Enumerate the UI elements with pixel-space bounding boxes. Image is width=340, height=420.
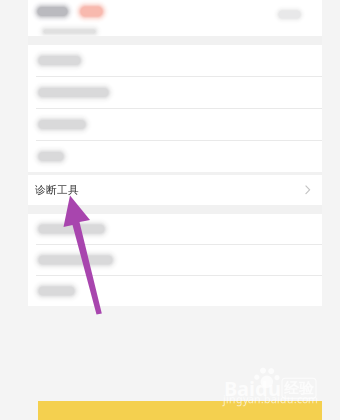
button[interactable]: Account [28,0,322,36]
button[interactable]: Setting [28,109,322,140]
button[interactable]: Setting [28,245,322,275]
button[interactable]: Setting [28,141,322,172]
button[interactable]: Setting [28,214,322,244]
staticText: jingyan.baidu.com [223,392,318,406]
button[interactable]: 诊断工具 [28,175,322,205]
button[interactable]: Setting [28,45,322,76]
staticText: Baidu [224,375,281,402]
button[interactable]: Primary action [28,401,322,420]
button[interactable]: Setting [28,276,322,306]
staticText: 经验 [284,379,314,397]
button[interactable]: Setting [28,77,322,108]
staticText: 诊断工具 [35,183,79,196]
